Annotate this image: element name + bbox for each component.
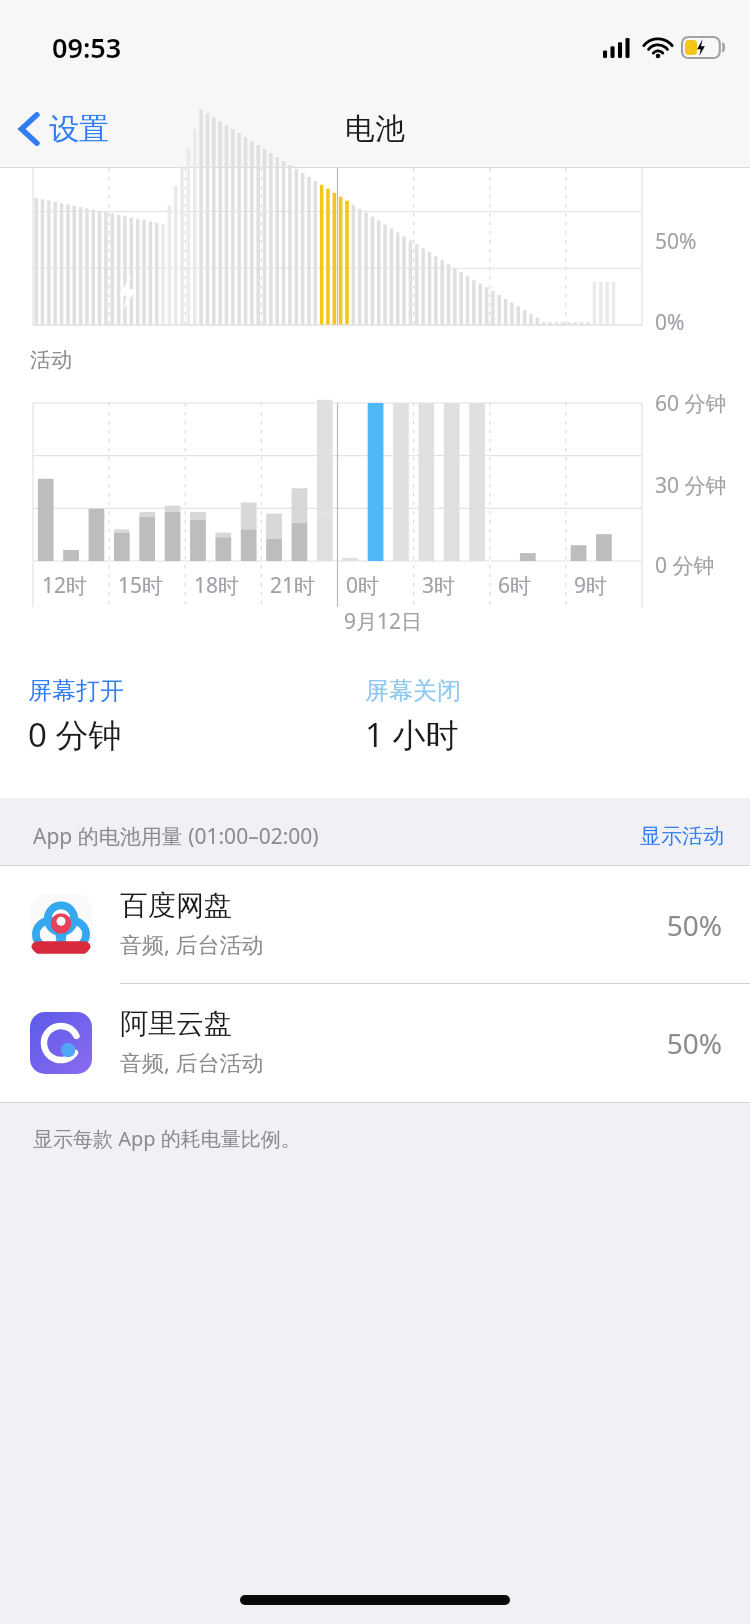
staticText: 活动 bbox=[30, 347, 72, 373]
button[interactable]: 设置 bbox=[0, 104, 123, 154]
staticText: 显示活动 bbox=[640, 823, 724, 849]
staticText: 屏幕关闭 bbox=[365, 676, 461, 706]
staticText: 3时 bbox=[422, 571, 456, 600]
staticText: 音频, 后台活动 bbox=[120, 1047, 264, 1077]
button[interactable]: 显示活动 bbox=[614, 813, 750, 859]
staticText: 18时 bbox=[194, 571, 240, 600]
staticText: 15时 bbox=[118, 571, 164, 600]
staticText: 设置 bbox=[49, 110, 109, 148]
staticText: 屏幕打开 bbox=[28, 676, 124, 706]
staticText: 21时 bbox=[270, 571, 316, 600]
staticText: 0 分钟 bbox=[28, 712, 122, 757]
staticText: 电池 bbox=[345, 110, 405, 148]
staticText: 9时 bbox=[574, 571, 608, 600]
staticText: 9月12日 bbox=[344, 607, 423, 636]
staticText: App 的电池用量 (01:00–02:00) bbox=[33, 822, 319, 851]
staticText: 0% bbox=[655, 308, 685, 337]
staticText: 0 分钟 bbox=[655, 551, 715, 580]
button[interactable]: 阿里云盘 bbox=[0, 984, 750, 1102]
staticText: 1 小时 bbox=[365, 712, 459, 757]
staticText: 0时 bbox=[346, 571, 380, 600]
staticText: 30 分钟 bbox=[655, 471, 727, 500]
staticText: 6时 bbox=[498, 571, 532, 600]
staticText: 阿里云盘 bbox=[120, 1006, 232, 1041]
staticText: 音频, 后台活动 bbox=[120, 929, 264, 959]
staticText: 50% bbox=[655, 227, 697, 256]
button[interactable]: 百度网盘 bbox=[0, 866, 750, 984]
staticText: 60 分钟 bbox=[655, 389, 727, 418]
staticText: 百度网盘 bbox=[120, 888, 232, 923]
staticText: 50% bbox=[666, 906, 722, 944]
staticText: 50% bbox=[666, 1024, 722, 1062]
staticText: 09:53 bbox=[52, 29, 122, 66]
staticText: 显示每款 App 的耗电量比例。 bbox=[33, 1125, 301, 1152]
staticText: 12时 bbox=[42, 571, 88, 600]
